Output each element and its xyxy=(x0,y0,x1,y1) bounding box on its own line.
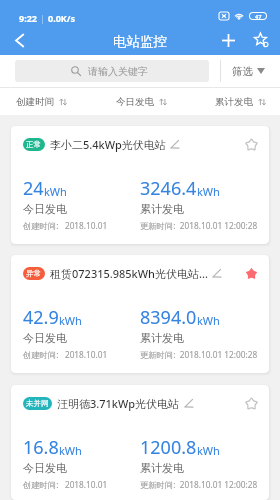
staticText: 1200.8 xyxy=(140,435,197,460)
staticText: | xyxy=(40,12,45,24)
button[interactable]: 正常 xyxy=(11,126,269,244)
button[interactable]: Back xyxy=(7,28,31,52)
staticText: 更新时间: 2018.10.01 12:00:28 xyxy=(140,220,258,231)
staticText: 24 xyxy=(23,176,44,201)
staticText: 正常 xyxy=(26,140,42,150)
staticText: kWh xyxy=(44,184,67,199)
staticText: 47 xyxy=(255,13,262,19)
staticText: 16.8 xyxy=(23,435,59,460)
staticText: 今日发电 xyxy=(23,331,67,345)
staticText: 3246.4 xyxy=(140,176,197,201)
staticText: kWh xyxy=(197,313,220,328)
button[interactable]: Favorite xyxy=(241,393,261,413)
staticText: 创建时间: 2018.10.01 xyxy=(23,479,108,490)
button[interactable]: 请输入关键字 xyxy=(15,60,209,82)
staticText: 累计发电 xyxy=(140,202,184,216)
staticText: 请输入关键字 xyxy=(88,65,148,78)
staticText: 李小二5.4kWp光伏电站 xyxy=(50,137,166,152)
staticText: 筛选 xyxy=(232,65,253,78)
staticText: 租赁072315.985kWh光伏电站... xyxy=(50,266,208,281)
button[interactable]: Favorite xyxy=(241,263,261,283)
button[interactable]: Add xyxy=(216,28,240,52)
staticText: 累计发电 xyxy=(215,96,253,108)
staticText: kWh xyxy=(197,443,220,458)
staticText: 未并网 xyxy=(26,399,49,409)
staticText: 今日发电 xyxy=(23,461,67,475)
button[interactable]: 今日发电 xyxy=(116,89,167,115)
button[interactable]: 未并网 xyxy=(11,385,269,500)
staticText: kWh xyxy=(59,313,82,328)
button[interactable]: 创建时间 xyxy=(16,89,67,115)
button[interactable]: 累计发电 xyxy=(215,89,266,115)
staticText: 汪明德3.71kWp光伏电站 xyxy=(57,396,180,411)
staticText: 更新时间: 2018.10.01 12:00:28 xyxy=(140,479,258,490)
staticText: kWh xyxy=(197,184,220,199)
staticText: kWh xyxy=(59,443,82,458)
staticText: 创建时间: 2018.10.01 xyxy=(23,349,108,360)
staticText: 今日发电 xyxy=(116,96,154,108)
staticText: 更新时间: 2018.10.01 12:00:28 xyxy=(140,349,258,360)
staticText: 0.0K/s xyxy=(48,12,76,24)
staticText: 8394.0 xyxy=(140,305,197,330)
staticText: 今日发电 xyxy=(23,202,67,216)
staticText: 异常 xyxy=(26,269,42,279)
staticText: 电站监控 xyxy=(113,33,167,50)
staticText: 创建时间: 2018.10.01 xyxy=(23,220,108,231)
button[interactable]: Favorites xyxy=(249,28,273,52)
staticText: 累计发电 xyxy=(140,461,184,475)
button[interactable]: Favorite xyxy=(241,134,261,154)
staticText: 累计发电 xyxy=(140,331,184,345)
staticText: 42.9 xyxy=(23,305,59,330)
button[interactable]: 筛选 xyxy=(221,55,280,87)
button[interactable]: 异常 xyxy=(11,255,269,373)
staticText: 创建时间 xyxy=(16,96,54,108)
staticText: 9:22 xyxy=(19,12,37,24)
